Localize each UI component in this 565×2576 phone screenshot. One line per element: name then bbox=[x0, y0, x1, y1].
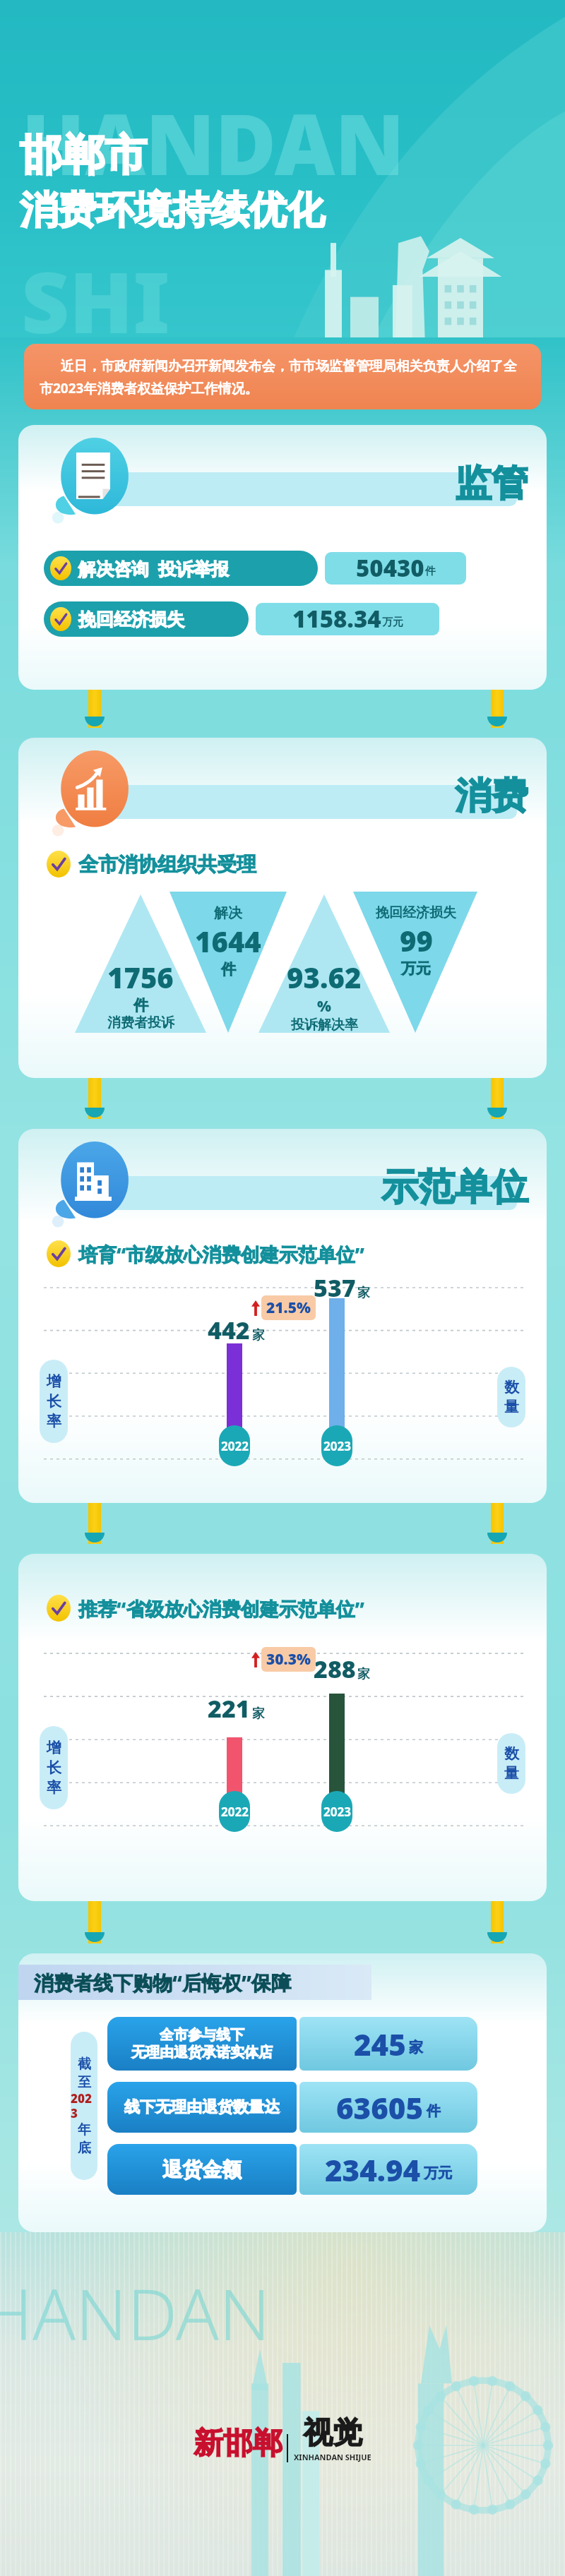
staticText: SHI bbox=[21, 244, 170, 358]
staticText: 年 底 bbox=[78, 2121, 91, 2156]
button[interactable]: 数 量 bbox=[497, 1733, 525, 1794]
staticText: 无理由退货承诺实体店 bbox=[131, 2044, 273, 2061]
staticText: 推荐“省级放心消费创建示范单位” bbox=[78, 1595, 364, 1622]
staticText: 50430 bbox=[356, 552, 424, 581]
button[interactable]: 截 至 bbox=[71, 2032, 97, 2180]
button[interactable]: 挽回经济损失 bbox=[44, 601, 249, 637]
staticText: 消费 bbox=[455, 773, 528, 820]
staticText: 截 至 bbox=[78, 2056, 91, 2090]
staticText: 家 bbox=[357, 1285, 370, 1301]
staticText: 288 bbox=[314, 1653, 356, 1685]
staticText: 2023 bbox=[71, 2090, 97, 2121]
button[interactable]: 增 长 率 bbox=[40, 1726, 68, 1809]
staticText: 万元 bbox=[401, 959, 431, 978]
staticText: HANDAN bbox=[0, 2265, 270, 2361]
staticText: 近日，市政府新闻办召开新闻发布会，市市场监督管理局相关负责人介绍了全市2023年… bbox=[40, 357, 525, 397]
button[interactable]: 234.94 bbox=[299, 2144, 477, 2195]
button[interactable]: 50430 bbox=[325, 552, 466, 585]
staticText: 93.62 bbox=[287, 958, 362, 996]
staticText: 2023 bbox=[323, 1438, 351, 1454]
staticText: 442 bbox=[208, 1314, 250, 1346]
staticText: 2022 bbox=[221, 1804, 249, 1820]
staticText: 投诉解决率 bbox=[291, 1017, 358, 1034]
button[interactable]: 近日，市政府新闻办召开新闻发布会，市市场监督管理局相关负责人介绍了全市2023年… bbox=[24, 344, 541, 409]
staticText: 234.94 bbox=[325, 2150, 421, 2190]
button[interactable]: 245 bbox=[299, 2017, 477, 2071]
button[interactable]: 增 长 率 bbox=[40, 1360, 68, 1443]
staticText: 数 量 bbox=[504, 1744, 519, 1783]
staticText: 消费者投诉 bbox=[107, 1014, 174, 1031]
staticText: 2022 bbox=[221, 1438, 249, 1454]
staticText: 30.3% bbox=[266, 1649, 311, 1670]
staticText: 增 长 率 bbox=[47, 1372, 61, 1430]
staticText: 63605 bbox=[336, 2087, 424, 2128]
staticText: 221 bbox=[208, 1692, 250, 1725]
staticText: 245 bbox=[354, 2024, 406, 2064]
staticText: 线下无理由退货数量达 bbox=[124, 2097, 280, 2117]
staticText: 全市参与线下 bbox=[160, 2026, 244, 2044]
staticText: % bbox=[317, 996, 331, 1017]
button[interactable]: 示范单位 bbox=[18, 1129, 547, 1503]
button[interactable]: 线下无理由退货数量达 bbox=[107, 2082, 297, 2133]
staticText: 监管 bbox=[455, 460, 528, 507]
button[interactable]: 63605 bbox=[299, 2082, 477, 2133]
staticText: 件 bbox=[133, 996, 148, 1014]
staticText: XINHANDAN SHIJUE bbox=[294, 2452, 371, 2462]
staticText: 挽回经济损失 bbox=[78, 609, 184, 630]
staticText: 家 bbox=[252, 1327, 265, 1343]
staticText: 全市消协组织共受理 bbox=[78, 852, 256, 877]
staticText: 增 长 率 bbox=[47, 1739, 61, 1797]
staticText: 挽回经济损失 bbox=[376, 904, 456, 921]
staticText: 万元 bbox=[382, 616, 403, 629]
staticText: 消费者线下购物“后悔权”保障 bbox=[34, 1969, 291, 1996]
staticText: 新邯郸 bbox=[194, 2425, 282, 2462]
button[interactable]: 全市参与线下 bbox=[107, 2017, 297, 2071]
staticText: 1756 bbox=[107, 958, 174, 996]
staticText: 培育“市级放心消费创建示范单位” bbox=[78, 1241, 364, 1267]
button[interactable]: 1158.34 bbox=[256, 603, 439, 635]
staticText: 视觉 bbox=[303, 2414, 362, 2452]
staticText: 1158.34 bbox=[292, 603, 381, 632]
staticText: 家 bbox=[252, 1706, 265, 1722]
button[interactable]: 解决咨询 投诉举报 bbox=[44, 551, 318, 586]
staticText: 件 bbox=[425, 565, 436, 578]
staticText: 解决咨询 投诉举报 bbox=[78, 556, 230, 580]
staticText: 21.5% bbox=[266, 1298, 311, 1318]
button[interactable]: 推荐“省级放心消费创建示范单位” bbox=[18, 1554, 547, 1901]
staticText: 消费环境持续优化 bbox=[20, 186, 325, 234]
staticText: 1644 bbox=[195, 922, 261, 960]
staticText: 件 bbox=[221, 960, 236, 978]
button[interactable]: 消费 bbox=[18, 738, 547, 1078]
staticText: 退货金额 bbox=[162, 2157, 242, 2182]
staticText: 示范单位 bbox=[381, 1164, 528, 1211]
staticText: 件 bbox=[427, 2102, 441, 2120]
staticText: 万元 bbox=[424, 2164, 452, 2182]
button[interactable]: 消费者线下购物“后悔权”保障 bbox=[18, 1965, 371, 2000]
staticText: 数 量 bbox=[504, 1378, 519, 1416]
staticText: 2023 bbox=[323, 1804, 351, 1820]
button[interactable]: 数 量 bbox=[497, 1367, 525, 1427]
button[interactable]: 退货金额 bbox=[107, 2144, 297, 2195]
staticText: 家 bbox=[409, 2039, 423, 2056]
button[interactable]: 新邯郸 bbox=[194, 2414, 371, 2462]
staticText: 99 bbox=[400, 921, 433, 959]
staticText: 邯郸市 bbox=[20, 128, 147, 182]
staticText: 家 bbox=[357, 1666, 370, 1682]
staticText: HANDAN bbox=[21, 86, 405, 200]
button[interactable]: 消费者线下购物“后悔权”保障 bbox=[18, 1953, 547, 2232]
staticText: 解决 bbox=[214, 904, 242, 922]
button[interactable]: 监管 bbox=[18, 425, 547, 690]
staticText: 537 bbox=[314, 1271, 356, 1304]
